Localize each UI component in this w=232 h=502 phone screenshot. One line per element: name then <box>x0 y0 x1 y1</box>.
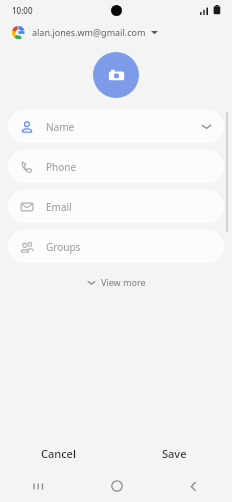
staticText: alan.jones.wm@gmail.com <box>32 26 146 38</box>
staticText: Phone <box>46 160 212 174</box>
button[interactable]: Cancel <box>0 436 116 470</box>
staticText: Name <box>46 120 201 134</box>
button[interactable]: Phone <box>8 150 224 183</box>
button[interactable]: Add photo <box>93 52 139 98</box>
staticText: 10:00 <box>12 5 33 16</box>
staticText: Groups <box>46 240 212 254</box>
button[interactable]: Name <box>8 110 224 143</box>
staticText: Save <box>162 446 187 461</box>
staticText: View more <box>101 276 146 288</box>
button[interactable]: View more <box>77 272 156 292</box>
button[interactable]: Recents <box>0 470 78 502</box>
button[interactable]: Home <box>78 470 155 502</box>
button[interactable]: Email <box>8 190 224 223</box>
staticText: Email <box>46 200 212 214</box>
button[interactable]: Back <box>155 470 232 502</box>
button[interactable]: Save <box>116 436 232 470</box>
staticText: Cancel <box>41 446 76 461</box>
button[interactable]: Groups <box>8 230 224 263</box>
button[interactable]: alan.jones.wm@gmail.com <box>0 20 232 44</box>
